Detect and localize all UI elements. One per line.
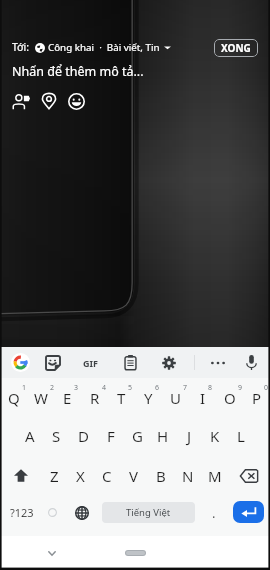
staticText: 6	[155, 383, 160, 393]
staticText: Z	[50, 466, 59, 486]
staticText: E	[63, 388, 72, 408]
button[interactable]: O	[216, 380, 243, 415]
button[interactable]: W	[27, 380, 54, 415]
staticText: M	[208, 466, 222, 486]
staticText: 9	[238, 383, 243, 393]
button[interactable]: Cài đặt	[156, 347, 181, 378]
staticText: 1	[22, 383, 27, 393]
button[interactable]: P	[243, 380, 270, 415]
staticText: H	[157, 426, 169, 446]
button[interactable]: E	[54, 380, 81, 415]
staticText: 7	[183, 383, 188, 393]
button[interactable]: K	[202, 415, 228, 457]
staticText: C	[102, 466, 112, 486]
button[interactable]: Check in	[38, 90, 60, 112]
staticText: 4	[102, 383, 107, 393]
staticText: R	[90, 388, 100, 408]
button[interactable]: C	[93, 457, 120, 494]
button[interactable]: Google	[8, 347, 33, 378]
button[interactable]: D	[70, 415, 97, 457]
button[interactable]: Nhập bằng giọng nói	[239, 347, 264, 378]
button[interactable]: Y	[135, 380, 162, 415]
staticText: X	[76, 466, 85, 486]
staticText: 0	[264, 383, 269, 393]
button[interactable]: Xoá	[228, 457, 270, 494]
button[interactable]: U	[162, 380, 189, 415]
staticText: K	[210, 426, 220, 446]
staticText: G	[132, 426, 143, 446]
staticText: GIF	[83, 357, 98, 369]
button[interactable]: I	[189, 380, 216, 415]
staticText: B	[156, 466, 166, 486]
staticText: A	[25, 426, 35, 446]
button[interactable]: X	[67, 457, 93, 494]
button[interactable]: .	[203, 494, 225, 531]
staticText: XONG	[221, 41, 251, 55]
button[interactable]: S	[43, 415, 70, 457]
staticText: T	[117, 388, 126, 408]
staticText: ?123	[10, 505, 34, 520]
staticText: D	[78, 426, 89, 446]
button[interactable]: Enter	[233, 501, 264, 523]
staticText: N	[182, 466, 194, 486]
staticText: I	[200, 388, 206, 408]
button[interactable]: Z	[41, 457, 67, 494]
button[interactable]: Q	[0, 380, 27, 415]
button[interactable]: B	[147, 457, 174, 494]
button[interactable]: N	[174, 457, 201, 494]
button[interactable]: J	[176, 415, 202, 457]
button[interactable]: Đổi ngôn ngữ	[70, 494, 94, 531]
staticText: 5	[128, 383, 133, 393]
staticText: U	[170, 388, 181, 408]
button[interactable]: Nhãn dán	[40, 347, 65, 378]
button[interactable]: XONG	[214, 39, 258, 57]
staticText: Công khai · Bài viết, Tin	[48, 41, 160, 54]
staticText: L	[237, 426, 245, 446]
staticText: 2	[50, 383, 55, 393]
button[interactable]: GIF	[78, 347, 103, 378]
staticText: .	[212, 504, 216, 522]
staticText: P	[252, 388, 262, 408]
button[interactable]: Thêm	[205, 347, 230, 378]
button[interactable]: Gắn thẻ bạn bè	[7, 90, 35, 112]
staticText: Tiếng Việt	[126, 506, 171, 519]
staticText: Y	[144, 388, 153, 408]
staticText: F	[107, 426, 115, 446]
staticText: O	[224, 388, 236, 408]
staticText: W	[34, 388, 48, 408]
button[interactable]: Cảm xúc	[65, 90, 87, 112]
staticText: V	[129, 466, 139, 486]
button[interactable]: Biểu tượng cảm xúc	[42, 494, 62, 531]
button[interactable]: V	[120, 457, 147, 494]
staticText: J	[187, 426, 192, 446]
staticText: Nhấn để thêm mô tả...	[12, 63, 144, 80]
button[interactable]: Công khai · Bài viết, Tin	[35, 41, 171, 54]
button[interactable]: F	[97, 415, 124, 457]
button[interactable]: Ẩn bàn phím	[43, 544, 61, 562]
button[interactable]: M	[201, 457, 228, 494]
staticText: 8	[208, 383, 213, 393]
button[interactable]: T	[108, 380, 135, 415]
button[interactable]: G	[124, 415, 150, 457]
button[interactable]: ?123	[6, 494, 38, 531]
staticText: S	[52, 426, 61, 446]
button[interactable]: Tiếng Việt	[102, 502, 195, 523]
button[interactable]: Shift	[0, 457, 41, 494]
button[interactable]: L	[228, 415, 254, 457]
button[interactable]: H	[150, 415, 176, 457]
button[interactable]: R	[81, 380, 108, 415]
staticText: Tới:	[12, 40, 30, 54]
staticText: Q	[8, 388, 20, 408]
button[interactable]: Bảng nhớ tạm	[118, 347, 143, 378]
staticText: 3	[74, 383, 79, 393]
button[interactable]: A	[16, 415, 43, 457]
